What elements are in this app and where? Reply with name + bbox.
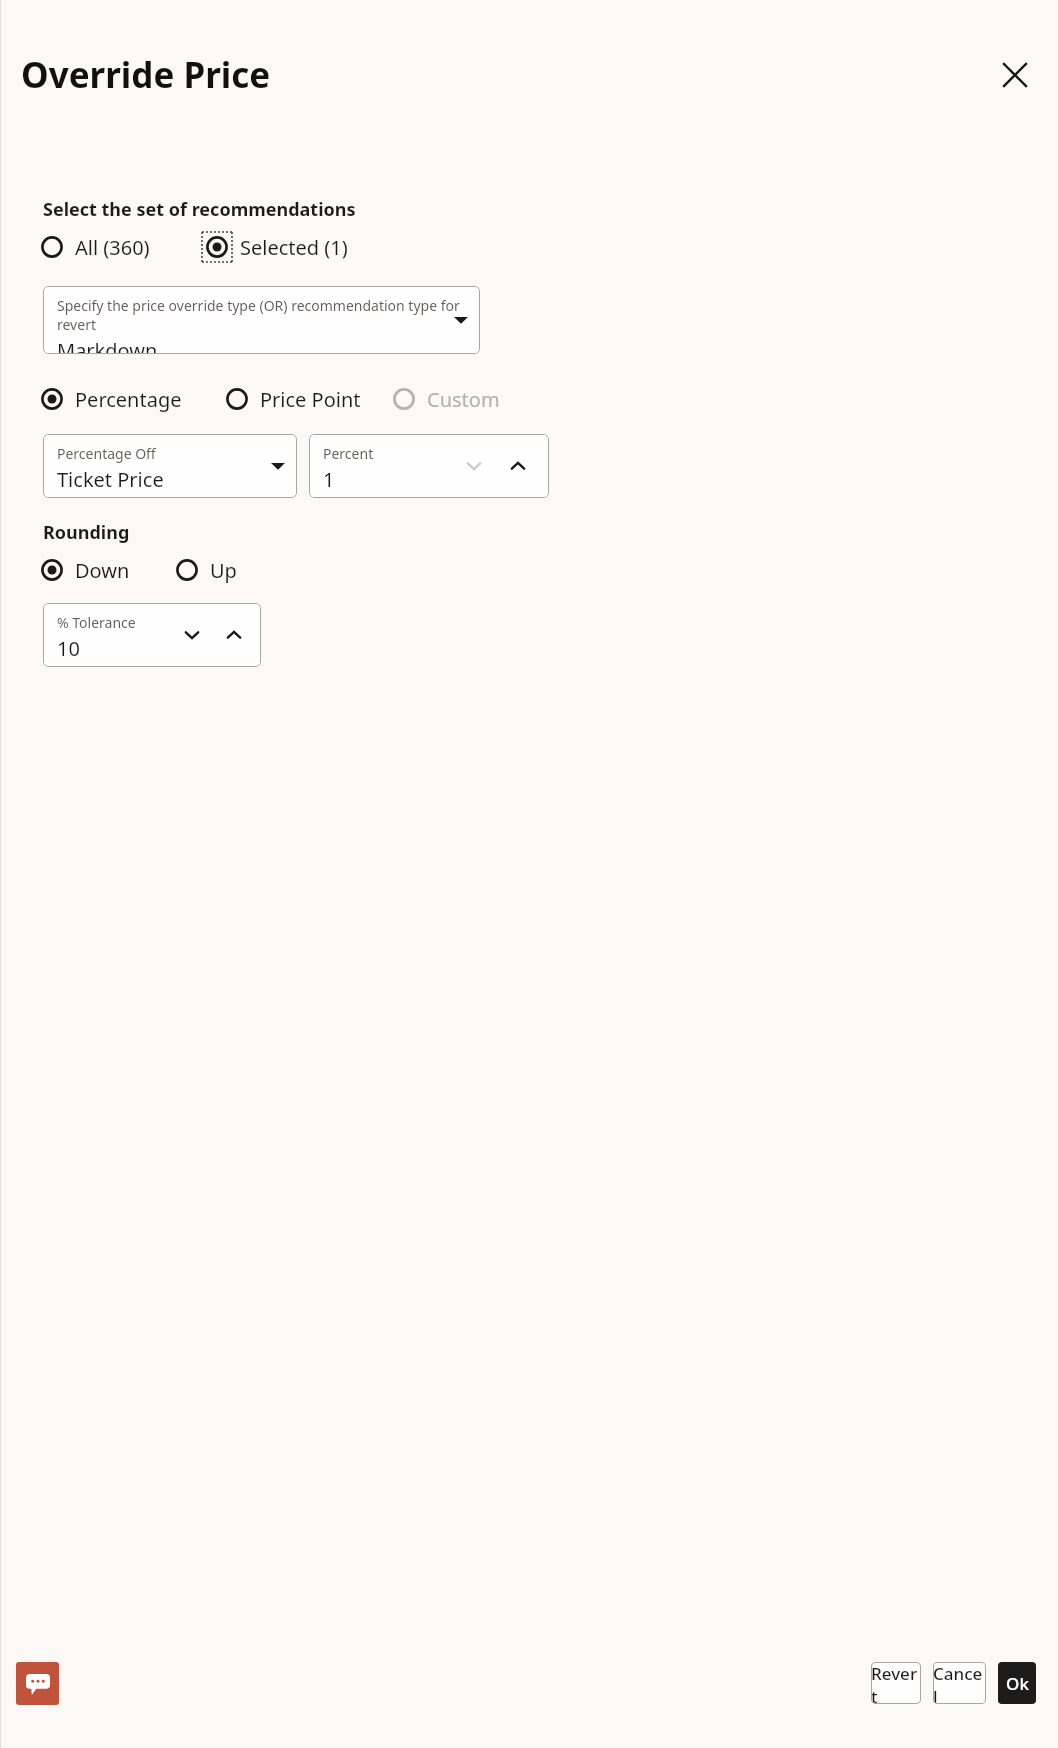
- button[interactable]: Price Point: [220, 382, 361, 416]
- button[interactable]: Up: [170, 553, 237, 587]
- button[interactable]: Decrease tolerance: [175, 618, 209, 652]
- staticText: Percentage: [75, 386, 182, 413]
- button[interactable]: Down: [35, 553, 130, 587]
- button[interactable]: Selected (1): [200, 230, 348, 264]
- staticText: Select the set of recommendations: [43, 197, 356, 222]
- staticText: Selected (1): [240, 234, 348, 261]
- staticText: Markdown: [57, 337, 158, 354]
- button[interactable]: Specify the price override type (OR) rec…: [43, 286, 480, 354]
- button[interactable]: Percentage Off: [43, 434, 297, 498]
- button[interactable]: Ok: [998, 1662, 1036, 1704]
- staticText: 10: [57, 635, 80, 662]
- button[interactable]: Increase percent: [501, 449, 535, 483]
- button[interactable]: All (360): [35, 230, 150, 264]
- staticText: Cancel: [933, 1662, 986, 1704]
- button[interactable]: Percentage: [35, 382, 182, 416]
- button[interactable]: Cancel: [933, 1662, 986, 1704]
- staticText: Ok: [1006, 1672, 1029, 1695]
- staticText: 1: [323, 466, 335, 493]
- button[interactable]: Chat: [16, 1662, 59, 1705]
- staticText: Ticket Price: [57, 466, 164, 493]
- staticText: Price Point: [260, 386, 361, 413]
- button[interactable]: Decrease percent: [457, 449, 491, 483]
- button[interactable]: Percent: [309, 434, 549, 498]
- staticText: Down: [75, 557, 130, 584]
- staticText: Up: [210, 557, 237, 584]
- button[interactable]: % Tolerance: [43, 603, 261, 667]
- staticText: All (360): [75, 234, 150, 261]
- button[interactable]: Revert: [871, 1662, 921, 1704]
- button[interactable]: Close: [992, 52, 1038, 98]
- staticText: Override Price: [21, 51, 271, 99]
- staticText: % Tolerance: [57, 613, 136, 632]
- staticText: Custom: [427, 386, 500, 413]
- staticText: Percent: [323, 444, 374, 463]
- button[interactable]: Custom: [387, 382, 500, 416]
- staticText: Percentage Off: [57, 444, 156, 463]
- button[interactable]: Increase tolerance: [217, 618, 251, 652]
- staticText: Rounding: [43, 520, 130, 545]
- staticText: Revert: [871, 1662, 921, 1704]
- staticText: Specify the price override type (OR) rec…: [57, 296, 480, 334]
